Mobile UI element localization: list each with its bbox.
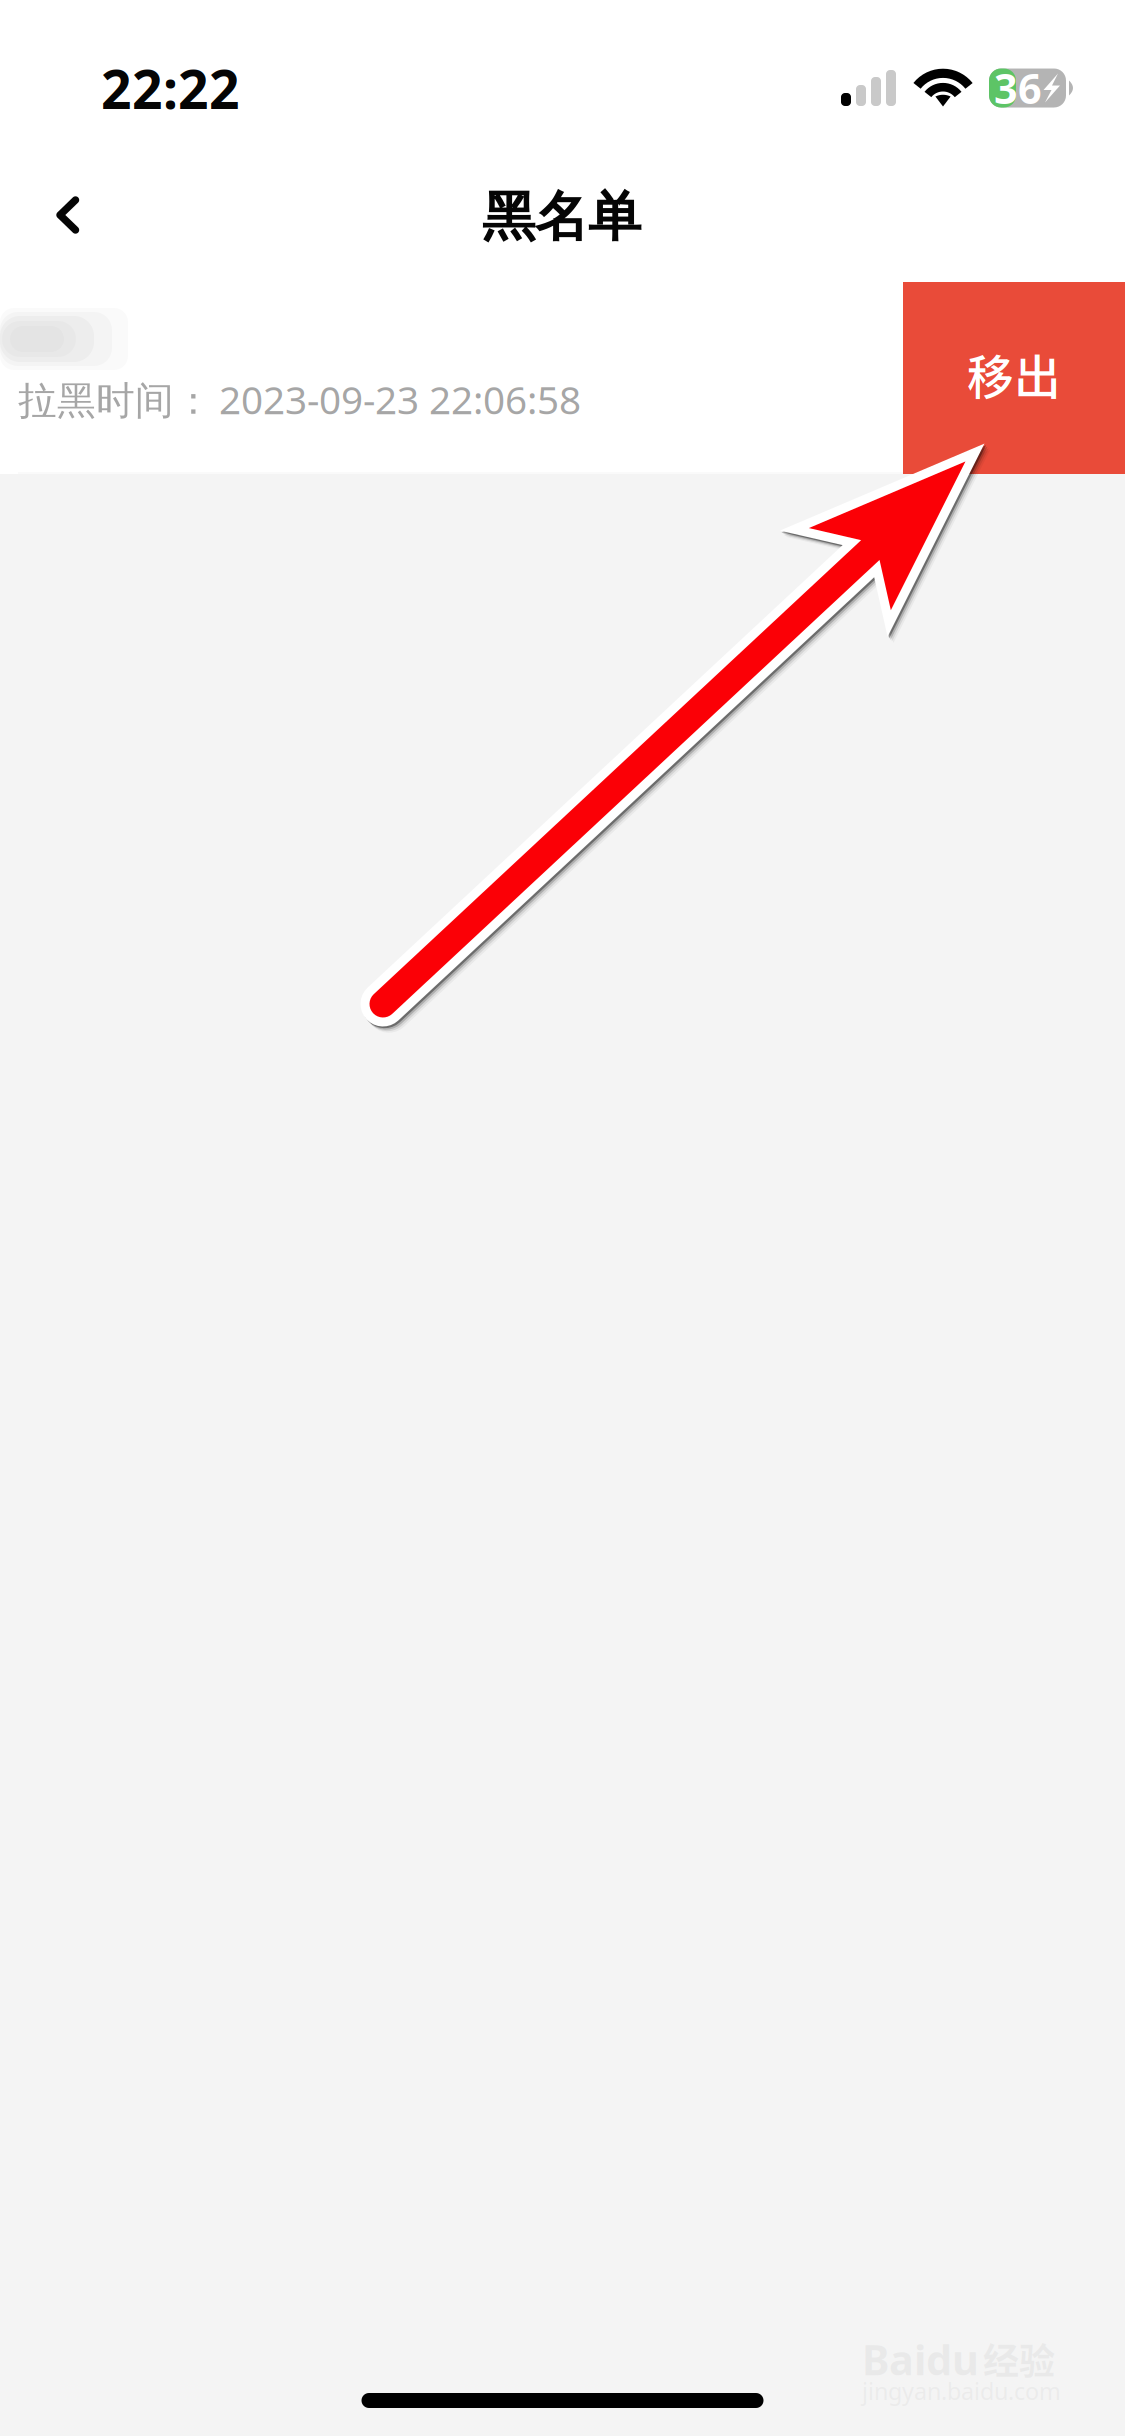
staticText: 22:22 xyxy=(101,52,240,125)
staticText: 移出 xyxy=(967,340,1061,408)
button[interactable]: Back xyxy=(0,160,136,270)
staticText: 黑名单 xyxy=(482,183,641,251)
staticText: 拉黑时间： 2023-09-23 22:06:58 xyxy=(18,373,581,426)
staticText: 经验 xyxy=(983,2333,1055,2385)
staticText: 36 xyxy=(994,60,1042,116)
staticText: Baidu xyxy=(862,2331,979,2387)
button[interactable]: 移出 xyxy=(903,282,1125,474)
staticText: jingyan.baidu.com xyxy=(862,2375,1061,2407)
